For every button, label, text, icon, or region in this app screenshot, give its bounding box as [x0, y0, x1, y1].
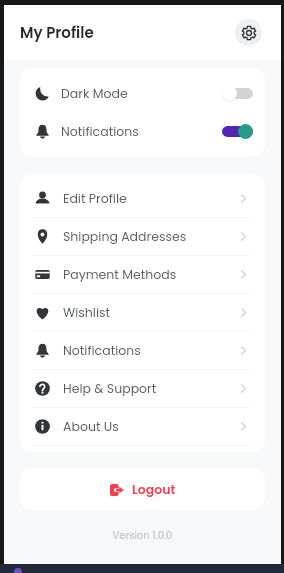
button[interactable]: Notifications	[20, 112, 265, 150]
staticText: Payment Methods	[63, 266, 177, 283]
button[interactable]: Toggle on	[222, 124, 253, 139]
button[interactable]: Help & Support	[20, 370, 265, 407]
staticText: Version 1.0.0	[4, 528, 281, 542]
button[interactable]: Notifications	[20, 332, 265, 369]
staticText: Notifications	[61, 123, 139, 140]
staticText: About Us	[63, 418, 119, 435]
staticText: Wishlist	[63, 304, 111, 321]
button[interactable]: Settings	[235, 19, 262, 46]
staticText: My Profile	[20, 22, 94, 43]
button[interactable]: Edit Profile	[20, 180, 265, 217]
button[interactable]: Wishlist	[20, 294, 265, 331]
button[interactable]: Toggle off	[222, 86, 253, 101]
staticText: Help & Support	[63, 380, 157, 397]
staticText: Notifications	[63, 342, 141, 359]
staticText: Edit Profile	[63, 190, 127, 207]
staticText: Logout	[132, 481, 176, 498]
button[interactable]: Dark Mode	[20, 74, 265, 112]
button[interactable]: Shipping Addresses	[20, 218, 265, 255]
button[interactable]: Logout	[20, 468, 265, 510]
button[interactable]: Payment Methods	[20, 256, 265, 293]
button[interactable]: About Us	[20, 408, 265, 445]
staticText: Shipping Addresses	[63, 228, 187, 245]
staticText: Dark Mode	[61, 85, 128, 102]
